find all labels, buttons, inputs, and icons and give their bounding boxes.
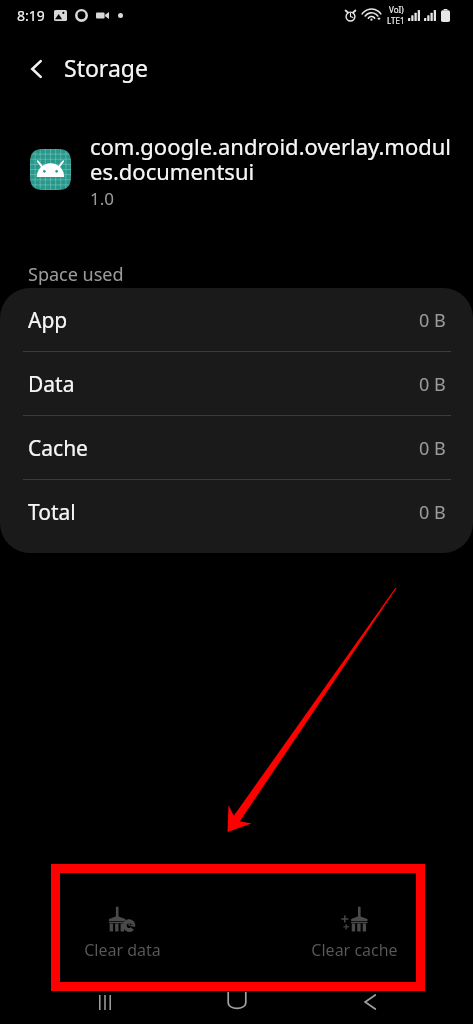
staticText: 8:19 (17, 6, 45, 25)
button[interactable]: Navigate up (19, 51, 54, 86)
staticText: Total (28, 498, 76, 527)
button[interactable]: Clear cache (236, 880, 473, 980)
staticText: LTE1 (387, 15, 405, 26)
staticText: Space used (28, 262, 124, 287)
staticText: 1.0 (90, 187, 115, 210)
staticText: Clear cache (311, 939, 398, 961)
button[interactable]: App (0, 288, 473, 352)
button[interactable]: Total (0, 480, 473, 544)
staticText: Cache (28, 434, 88, 463)
button[interactable]: Data (0, 352, 473, 416)
staticText: 0 B (419, 436, 446, 461)
staticText: 0 B (419, 372, 446, 397)
staticText: App (28, 306, 68, 335)
staticText: Data (28, 370, 75, 399)
button[interactable]: Recent apps (75, 982, 135, 1024)
button[interactable]: Home (207, 982, 267, 1024)
button[interactable]: Cache (0, 416, 473, 480)
button[interactable]: Back (340, 982, 400, 1024)
staticText: 0 B (419, 500, 446, 525)
staticText: VoI) (389, 4, 404, 15)
button[interactable]: Clear data (0, 880, 236, 980)
staticText: Clear data (84, 939, 161, 961)
staticText: Storage (64, 52, 148, 83)
staticText: com.google.android.overlay.modules.docum… (90, 131, 459, 187)
staticText: 0 B (419, 308, 446, 333)
